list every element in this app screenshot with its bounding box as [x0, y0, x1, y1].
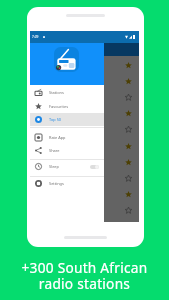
staticText: Sleep: [49, 164, 59, 169]
button[interactable]: Stations: [30, 86, 104, 99]
staticText: 7:29: [32, 35, 39, 39]
button[interactable]: Top 50: [30, 113, 104, 126]
button[interactable]: [30, 122, 139, 138]
staticText: Rate App: [49, 135, 66, 140]
button[interactable]: [30, 57, 139, 73]
staticText: Share: [49, 148, 60, 153]
button[interactable]: [30, 187, 139, 203]
button[interactable]: [30, 106, 139, 122]
button[interactable]: Share: [30, 144, 104, 157]
button[interactable]: [30, 154, 139, 170]
button[interactable]: Favourites: [30, 100, 104, 113]
staticText: +300 South African radio stations: [0, 258, 169, 293]
button[interactable]: [30, 203, 139, 219]
button[interactable]: [30, 89, 139, 105]
staticText: Stations: [49, 90, 64, 95]
button[interactable]: Rate App: [30, 131, 104, 144]
button[interactable]: [30, 73, 139, 89]
button[interactable]: [30, 170, 139, 186]
staticText: Top 50: [49, 117, 62, 122]
button[interactable]: [30, 138, 139, 154]
button[interactable]: Sleep: [30, 160, 104, 173]
staticText: Settings: [49, 181, 64, 186]
button[interactable]: Settings: [30, 177, 104, 190]
other: App icon: [54, 47, 79, 72]
staticText: Favourites: [49, 104, 69, 109]
